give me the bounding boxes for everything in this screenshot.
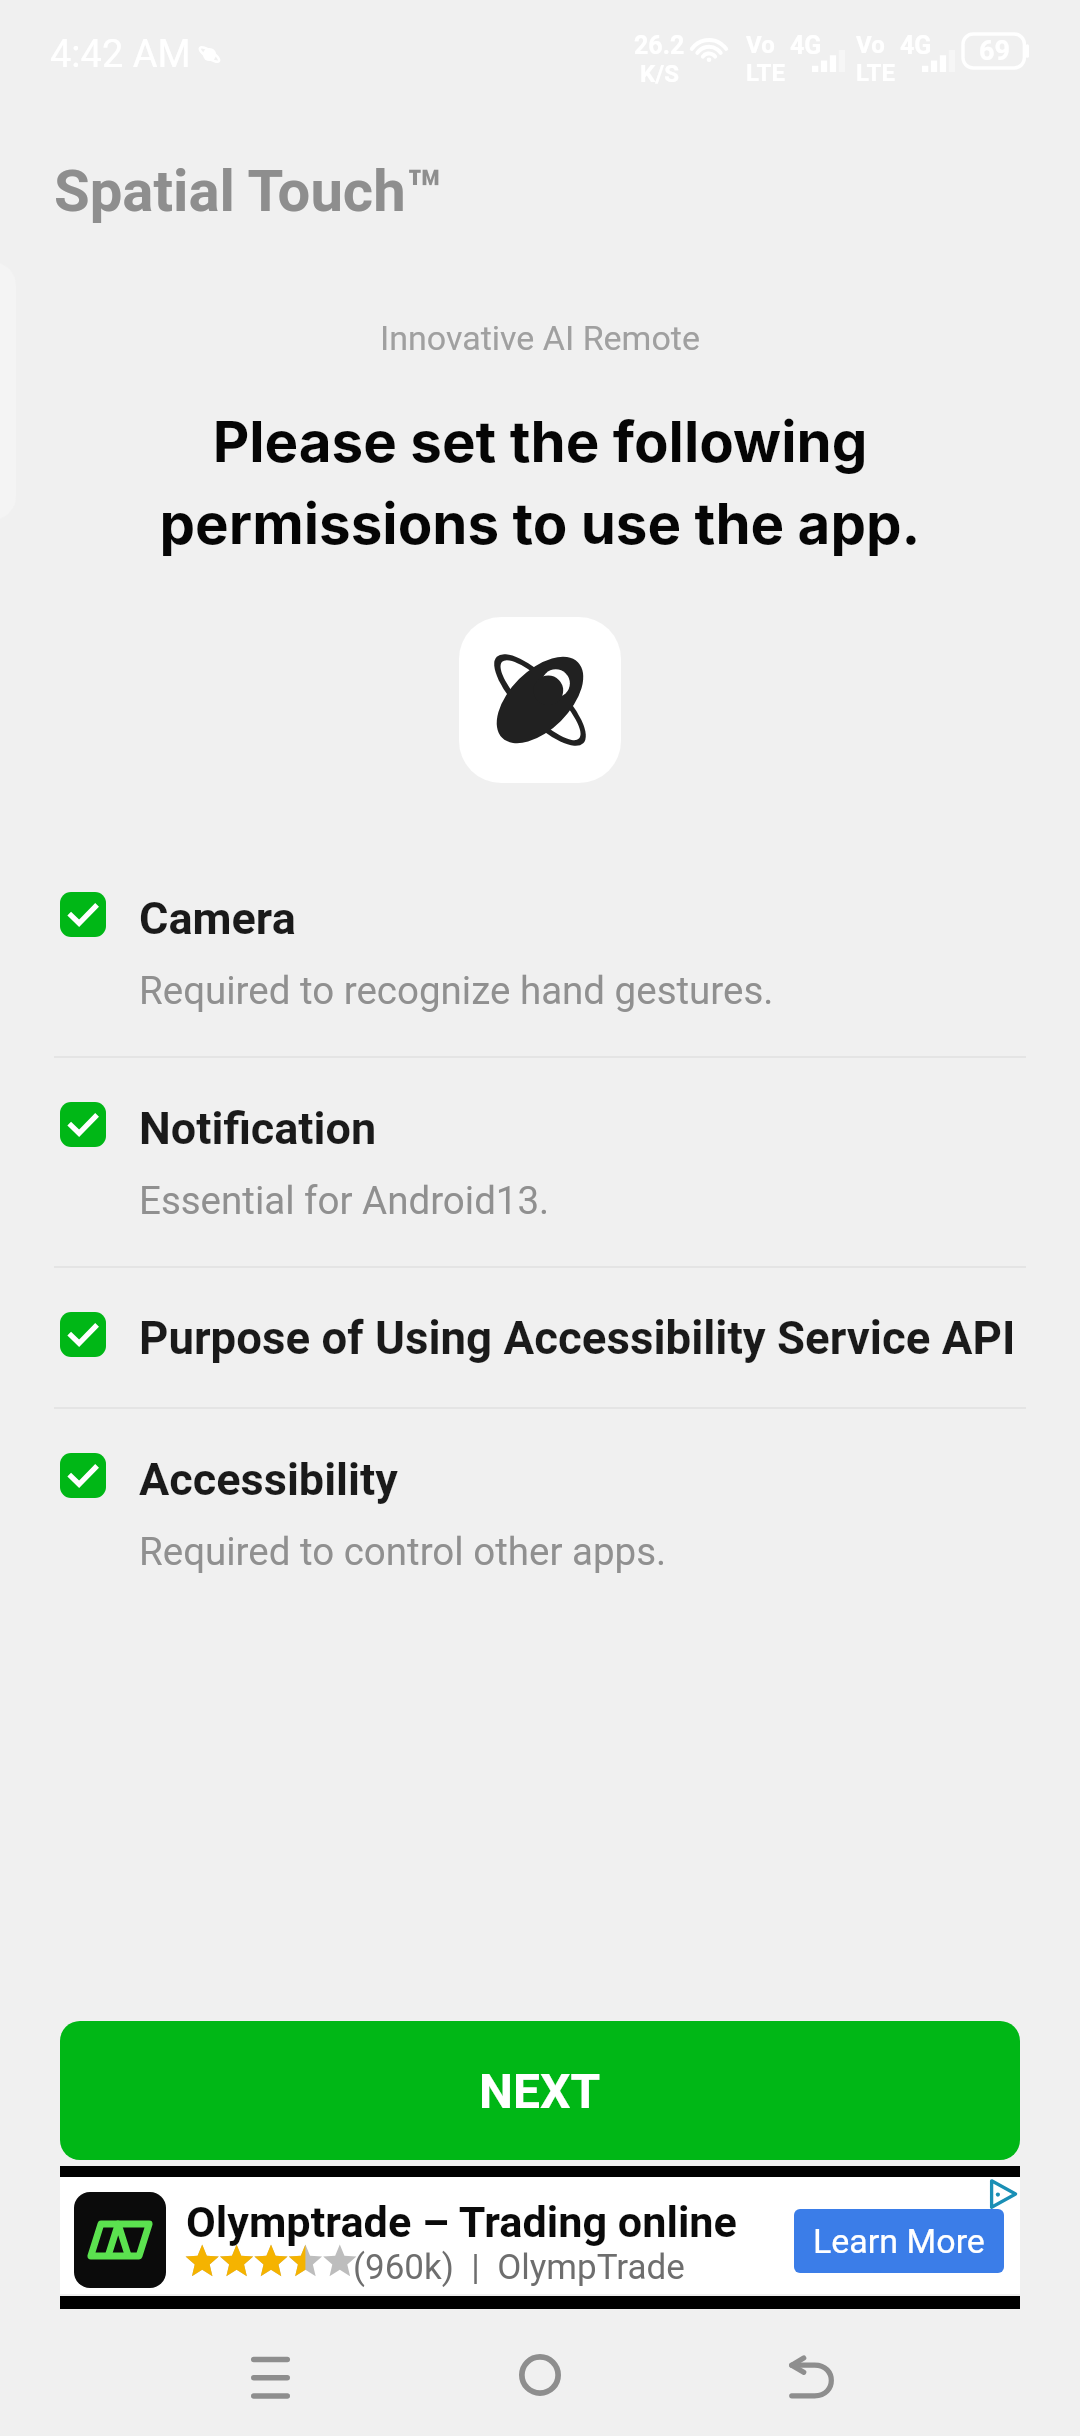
button[interactable]: Recent apps [230,2335,310,2415]
staticText: Notification [139,1102,1074,1155]
button[interactable]: Home [500,2335,580,2415]
button[interactable] [0,1409,1080,1610]
staticText: Olymptrade – Trading online [186,2197,737,2248]
staticText: NEXT [479,2063,601,2119]
staticText: Required to control other apps. [139,1529,1039,1574]
staticText: Vo [856,31,885,59]
staticText: Purpose of Using Accessibility Service A… [139,1312,1074,1365]
staticText: 4G [790,31,822,60]
staticText: (960k) | OlympTrade [353,2247,685,2288]
staticText: Camera [139,892,1074,945]
button[interactable] [0,1268,1080,1407]
staticText: Please set the following permissions to … [96,407,984,557]
staticText: Learn More [813,2221,985,2261]
staticText: LTE [746,59,785,87]
button[interactable]: Learn More [794,2209,1004,2273]
staticText: Required to recognize hand gestures. [139,968,1039,1013]
button[interactable] [0,1058,1080,1266]
button[interactable] [60,2177,1020,2294]
staticText: LTE [856,59,895,87]
button[interactable]: Back [772,2339,852,2419]
staticText: Essential for Android13. [139,1178,1039,1223]
staticText: 26.2 [634,31,685,60]
staticText: 4G [900,31,932,60]
staticText: K/S [640,60,679,88]
button[interactable] [0,860,1080,1056]
staticText: 4:42 AM [50,32,191,77]
staticText: Accessibility [139,1453,1074,1506]
staticText: Innovative AI Remote [0,318,1080,358]
staticText: Spatial Touch™ [54,157,443,225]
staticText: Vo [746,31,775,59]
button[interactable]: NEXT [60,2021,1020,2160]
staticText: 69 [979,35,1010,67]
